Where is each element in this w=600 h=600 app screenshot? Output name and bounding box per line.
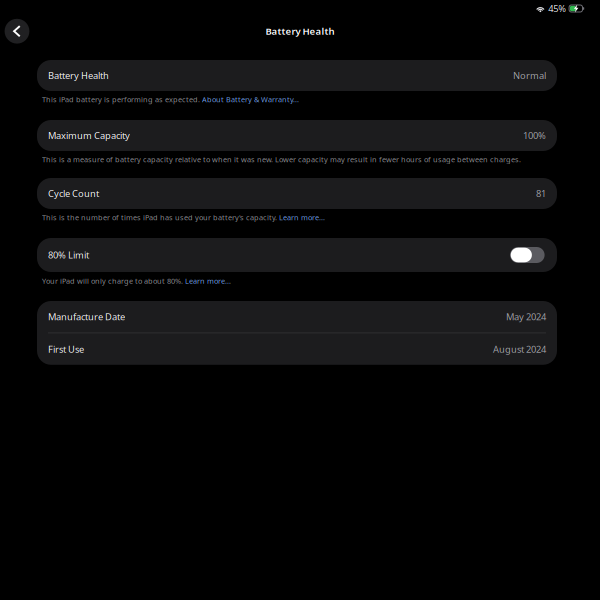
button[interactable]: Battery Health: [37, 60, 557, 91]
staticText: Manufacture Date: [48, 310, 125, 323]
button[interactable]: Maximum Capacity: [37, 120, 557, 151]
staticText: 81: [536, 187, 546, 200]
staticText: Your iPad will only charge to about 80%.: [42, 276, 185, 286]
staticText: This is a measure of battery capacity re…: [42, 154, 521, 164]
staticText: Normal: [513, 69, 546, 82]
staticText: Cycle Count: [48, 187, 99, 200]
staticText: May 2024: [506, 310, 546, 323]
staticText: This iPad battery is performing as expec…: [42, 94, 202, 104]
staticText: Learn more...: [279, 212, 325, 222]
staticText: 45%: [548, 2, 566, 15]
staticText: This is the number of times iPad has use…: [42, 212, 279, 222]
staticText: Maximum Capacity: [48, 129, 130, 142]
staticText: 80% Limit: [48, 249, 89, 261]
button[interactable]: First Use: [37, 333, 557, 365]
button[interactable]: Back: [2, 17, 32, 47]
button[interactable]: Learn more...: [279, 212, 325, 222]
staticText: Battery Health: [265, 24, 334, 38]
button[interactable]: Cycle Count: [37, 178, 557, 209]
staticText: About Battery & Warranty...: [202, 94, 299, 104]
staticText: August 2024: [493, 343, 546, 355]
button[interactable]: 80% Limit: [37, 238, 557, 272]
staticText: Battery Health: [48, 69, 109, 82]
staticText: First Use: [48, 343, 84, 355]
button[interactable]: Learn more...: [185, 276, 231, 286]
staticText: Learn more...: [185, 276, 231, 286]
button[interactable]: Manufacture Date: [37, 301, 557, 332]
staticText: 100%: [523, 129, 546, 142]
button[interactable]: About Battery & Warranty...: [202, 94, 299, 104]
